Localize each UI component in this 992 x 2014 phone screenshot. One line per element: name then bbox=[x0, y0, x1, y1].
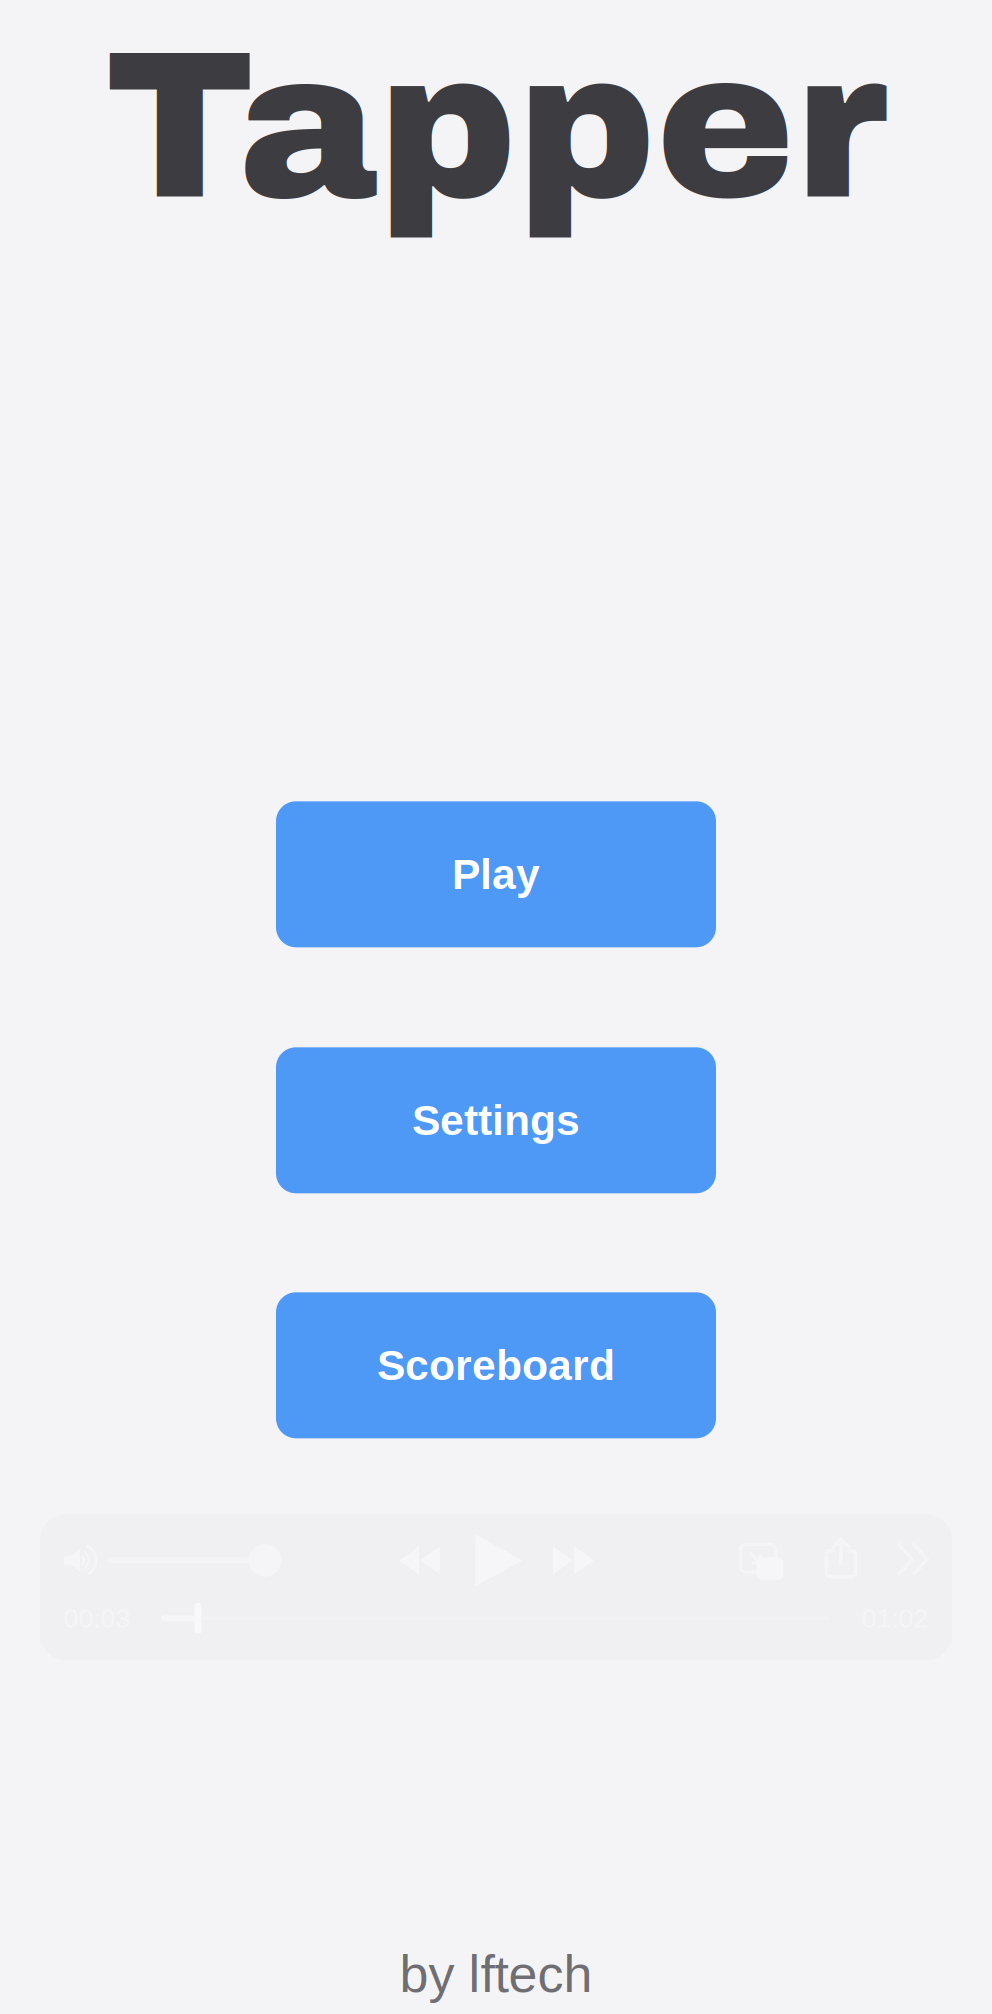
button[interactable]: Play bbox=[276, 801, 716, 947]
staticText: Settings bbox=[412, 1096, 580, 1144]
staticText: by lftech bbox=[399, 1945, 592, 2003]
button[interactable]: Settings bbox=[276, 1047, 716, 1193]
staticText: Tapper bbox=[105, 14, 887, 240]
button[interactable]: Scoreboard bbox=[276, 1292, 716, 1438]
staticText: Scoreboard bbox=[377, 1341, 615, 1389]
staticText: Play bbox=[452, 850, 540, 898]
